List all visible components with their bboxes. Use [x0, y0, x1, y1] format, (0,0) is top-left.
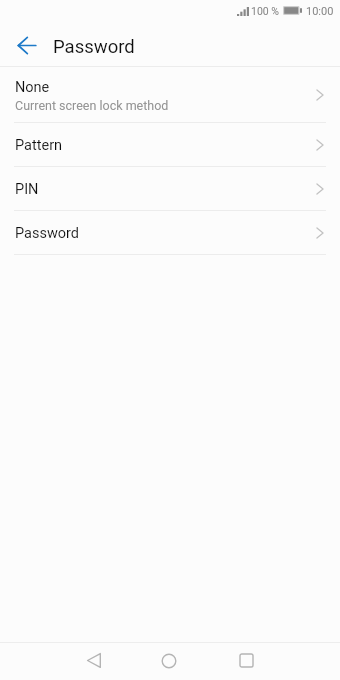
button[interactable]: None	[0, 67, 340, 122]
button[interactable]: Password	[0, 211, 340, 254]
staticText: Password	[15, 225, 80, 242]
button[interactable]: Recents	[218, 642, 274, 679]
staticText: PIN	[15, 181, 39, 198]
button[interactable]: PIN	[0, 167, 340, 210]
button[interactable]: Pattern	[0, 123, 340, 166]
staticText: 100 %	[251, 5, 279, 17]
staticText: None	[15, 79, 50, 96]
staticText: Pattern	[15, 137, 63, 154]
button[interactable]: Back	[66, 642, 122, 679]
staticText: Password	[53, 36, 135, 58]
staticText: 10:00	[306, 5, 334, 18]
button[interactable]: Back	[10, 28, 44, 62]
button[interactable]: Home	[141, 642, 197, 679]
staticText: Current screen lock method	[15, 98, 169, 113]
